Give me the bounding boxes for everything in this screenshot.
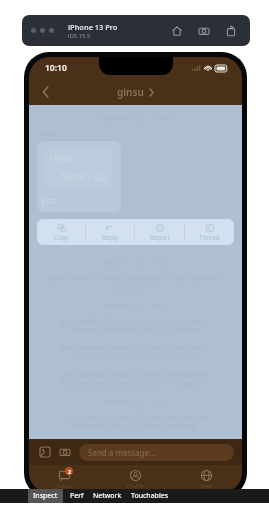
staticText: iPhone 13 Pro — [68, 22, 118, 32]
staticText: Thread — [199, 233, 220, 241]
staticText: What's up — [62, 170, 107, 183]
staticText: Profile — [127, 482, 144, 489]
button[interactable]: ginsu — [117, 85, 155, 99]
staticText: Apps — [200, 482, 213, 489]
button[interactable]: Apps — [171, 465, 242, 493]
staticText: 2 — [68, 468, 71, 475]
button[interactable]: Rotate — [223, 23, 239, 39]
button[interactable]: Profile — [100, 465, 171, 493]
button[interactable]: Perf — [70, 491, 84, 501]
button[interactable]: Camera — [57, 444, 73, 460]
staticText: Inbox — [57, 482, 72, 489]
staticText: Touchables — [131, 491, 168, 501]
button[interactable]: 2 — [29, 465, 100, 493]
button[interactable]: Home — [169, 23, 185, 39]
staticText: iOS 15.5 — [68, 32, 91, 40]
staticText: ginsu — [117, 85, 144, 99]
staticText: Send a message... — [88, 447, 156, 458]
button[interactable]: Thread — [185, 219, 234, 245]
button[interactable]: Screenshot — [196, 23, 212, 39]
button[interactable]: Copy — [37, 219, 85, 245]
staticText: Perf — [70, 491, 84, 501]
staticText: Reply — [102, 233, 118, 241]
button[interactable]: Report — [135, 219, 184, 245]
button[interactable]: Reply — [86, 219, 134, 245]
staticText: Inspect — [33, 491, 58, 501]
staticText: Network — [93, 491, 122, 501]
staticText: yoo — [41, 195, 56, 207]
button[interactable]: Photos — [37, 444, 53, 460]
button[interactable]: Network — [93, 491, 122, 501]
button[interactable]: Touchables — [131, 491, 168, 501]
staticText: 10:10 — [45, 62, 67, 74]
button[interactable]: Back — [35, 81, 57, 103]
button[interactable]: Send a message... — [79, 444, 234, 461]
staticText: Report — [150, 233, 170, 241]
button[interactable]: Inspect — [33, 491, 58, 501]
staticText: Copy — [54, 233, 69, 241]
staticText: Hello — [50, 152, 74, 165]
